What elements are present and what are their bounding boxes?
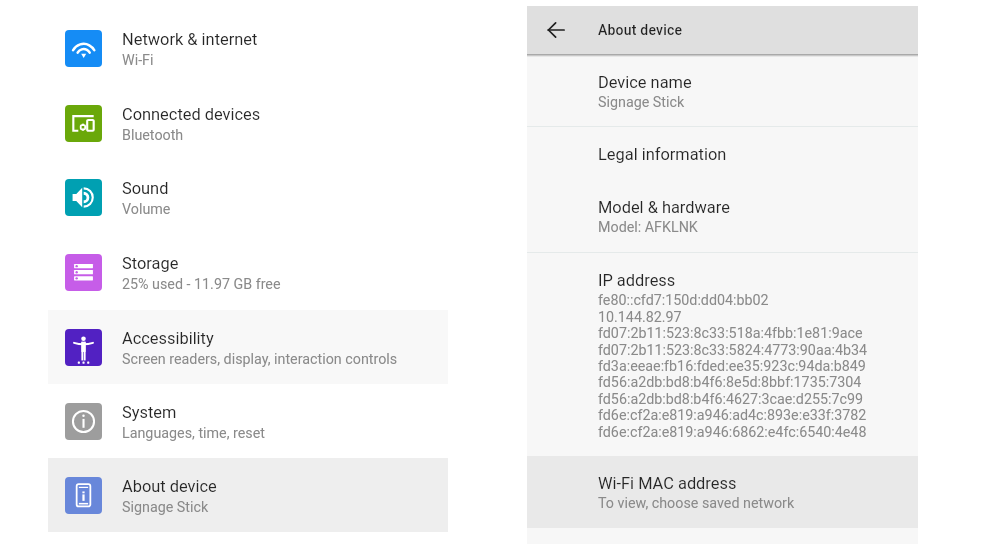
staticText: Legal information (598, 145, 727, 164)
staticText: fd6e:cf2a:e819:a946:ad4c:893e:e33f:3782 (598, 407, 867, 424)
staticText: Model & hardware (598, 198, 730, 217)
button[interactable]: Model & hardware (527, 180, 918, 252)
staticText: fd07:2b11:523:8c33:5824:4773:90aa:4b34 (598, 342, 868, 359)
staticText: fd6e:cf2a:e819:a946:6862:e4fc:6540:4e48 (598, 424, 867, 441)
button[interactable]: Storage (48, 235, 448, 309)
button[interactable]: Legal information (527, 127, 918, 180)
button[interactable]: Accessibility (48, 310, 448, 384)
staticText: Device name (598, 73, 692, 92)
button[interactable]: Network & internet (48, 11, 448, 85)
staticText: IP address (598, 271, 676, 290)
button[interactable]: About device (48, 458, 448, 532)
staticText: Volume (122, 201, 171, 218)
button[interactable]: Wi-Fi MAC address (527, 456, 918, 528)
staticText: System (122, 403, 177, 422)
staticText: Model: AFKLNK (598, 219, 698, 236)
staticText: To view, choose saved network (598, 495, 795, 512)
staticText: 10.144.82.97 (598, 309, 682, 326)
staticText: fd56:a2db:bd8:b4f6:8e5d:8bbf:1735:7304 (598, 374, 862, 391)
button[interactable]: Back (535, 9, 577, 51)
staticText: Signage Stick (598, 94, 685, 111)
staticText: Wi-Fi (122, 52, 154, 69)
button[interactable]: Sound (48, 160, 448, 234)
staticText: Wi-Fi MAC address (598, 474, 737, 493)
staticText: 25% used - 11.97 GB free (122, 276, 281, 293)
staticText: Network & internet (122, 30, 258, 49)
button[interactable]: Device name (527, 55, 918, 126)
staticText: About device (598, 22, 683, 38)
staticText: Sound (122, 179, 169, 198)
button[interactable]: Connected devices (48, 86, 448, 160)
staticText: Storage (122, 254, 179, 273)
button[interactable]: System (48, 384, 448, 458)
staticText: fd3a:eeae:fb16:fded:ee35:923c:94da:b849 (598, 358, 866, 375)
staticText: Languages, time, reset (122, 425, 265, 442)
staticText: Accessibility (122, 329, 214, 348)
staticText: fd56:a2db:bd8:b4f6:4627:3cae:d255:7c99 (598, 391, 864, 408)
button[interactable]: IP address (527, 253, 918, 456)
staticText: Connected devices (122, 105, 261, 124)
staticText: fd07:2b11:523:8c33:518a:4fbb:1e81:9ace (598, 325, 863, 342)
staticText: Screen readers, display, interaction con… (122, 351, 398, 368)
staticText: About device (122, 477, 217, 496)
staticText: fe80::cfd7:150d:dd04:bb02 (598, 292, 769, 309)
staticText: Bluetooth (122, 127, 184, 144)
staticText: Signage Stick (122, 499, 209, 516)
